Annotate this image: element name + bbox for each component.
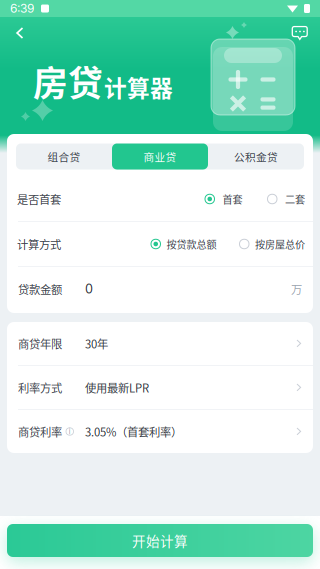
staticText: 商业贷 xyxy=(143,149,176,164)
button[interactable]: 首套 xyxy=(205,192,242,206)
button[interactable]: 按房屋总价 xyxy=(239,237,305,251)
button[interactable]: 组合贷 xyxy=(16,143,112,169)
staticText: 6:39 xyxy=(10,1,34,16)
button[interactable]: 开始计算 xyxy=(7,524,313,557)
staticText: 使用最新LPR xyxy=(85,379,149,396)
staticText: 按贷款总额 xyxy=(166,237,216,251)
staticText: 3.05%（首套利率） xyxy=(85,423,182,440)
button[interactable]: 商业贷 xyxy=(112,143,208,169)
staticText: 贷款金额 xyxy=(18,281,62,297)
staticText: 开始计算 xyxy=(132,531,188,550)
staticText: 组合贷 xyxy=(47,149,80,164)
staticText: 是否首套 xyxy=(17,191,61,207)
staticText: 二套 xyxy=(285,192,305,206)
staticText: 按房屋总价 xyxy=(255,237,305,251)
staticText: 计算方式 xyxy=(17,236,61,252)
staticText: 商贷年限 xyxy=(18,335,62,352)
staticText: 首套 xyxy=(222,192,242,206)
button[interactable]: 二套 xyxy=(267,192,305,206)
button[interactable]: 商贷利率 xyxy=(7,410,313,453)
staticText: 0 xyxy=(85,281,93,297)
staticText: i xyxy=(69,427,71,436)
button[interactable]: 公积金贷 xyxy=(208,143,304,169)
staticText: 商贷利率 xyxy=(18,423,62,440)
button[interactable]: 利率方式 xyxy=(7,366,313,409)
button[interactable]: 商贷年限 xyxy=(7,322,313,365)
staticText: 房贷 xyxy=(33,56,103,106)
staticText: 30年 xyxy=(85,335,108,352)
staticText: 利率方式 xyxy=(18,379,62,396)
button[interactable]: Back xyxy=(6,19,34,47)
staticText: 公积金贷 xyxy=(234,149,278,164)
button[interactable]: 按贷款总额 xyxy=(151,237,216,251)
staticText: 万 xyxy=(291,281,302,297)
staticText: 计算器 xyxy=(104,70,173,103)
button[interactable]: Feedback xyxy=(286,19,314,47)
